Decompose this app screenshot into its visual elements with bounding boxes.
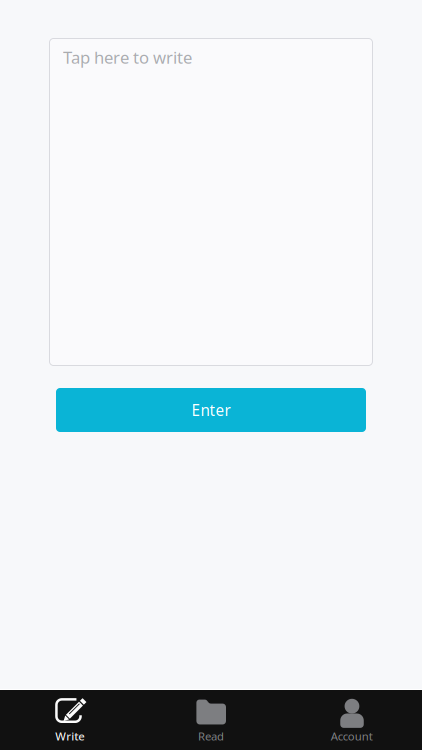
staticText: Write	[55, 728, 85, 744]
button[interactable]: Read	[141, 690, 281, 750]
button[interactable]: Write	[0, 690, 141, 750]
button[interactable]: Account	[281, 690, 422, 750]
staticText: Tap here to write	[63, 46, 192, 69]
button[interactable]: Enter	[56, 388, 366, 432]
staticText: Read	[198, 728, 224, 744]
staticText: Account	[331, 728, 373, 744]
button[interactable]: Tap here to write	[49, 38, 373, 366]
staticText: Enter	[191, 400, 230, 420]
